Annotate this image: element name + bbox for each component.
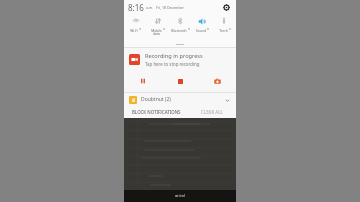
staticText: Sound: [196, 28, 206, 32]
staticText: Wi-Fi: [130, 28, 138, 32]
staticText: Torch: [219, 28, 228, 32]
staticText: Mobile data: [151, 28, 162, 36]
button[interactable]: Wi-Fi: [125, 28, 146, 41]
button[interactable]: Pause recording: [124, 70, 162, 92]
button[interactable]: Take screenshot: [199, 70, 236, 92]
staticText: 8:16: [128, 2, 144, 13]
staticText: CLEAR ALL: [201, 109, 223, 115]
staticText: d: [132, 97, 135, 103]
button[interactable]: Torch: [214, 14, 234, 28]
button[interactable]: Bluetooth: [170, 14, 190, 28]
button[interactable]: Recording in progress: [124, 48, 236, 70]
staticText: Bluetooth: [171, 28, 187, 32]
staticText: Doubtnut (2): [141, 96, 171, 103]
button[interactable]: Expand: [223, 96, 231, 104]
button[interactable]: BLOCK NOTIFICATIONS: [124, 106, 188, 117]
button[interactable]: Bluetooth: [170, 28, 191, 41]
button[interactable]: Sound: [192, 28, 213, 41]
button[interactable]: Expand quick settings: [124, 41, 236, 47]
button[interactable]: Torch: [214, 28, 235, 41]
button[interactable]: Mobile data: [148, 14, 168, 28]
button[interactable]: Stop recording: [162, 70, 199, 92]
button[interactable]: d: [124, 93, 236, 106]
button[interactable]: Mobile data: [147, 28, 168, 41]
staticText: a.m.: [146, 5, 154, 10]
button[interactable]: CLEAR ALL: [188, 106, 236, 117]
button[interactable]: Settings: [221, 2, 232, 13]
staticText: airtel: [175, 193, 186, 199]
staticText: BLOCK NOTIFICATIONS: [132, 109, 181, 115]
button[interactable]: Sound: [192, 14, 212, 28]
staticText: Fri, 18 December: [156, 5, 184, 10]
staticText: Tap here to stop recording: [145, 61, 200, 67]
button[interactable]: Wi-Fi: [126, 14, 146, 28]
staticText: Recording in progress: [145, 52, 203, 60]
